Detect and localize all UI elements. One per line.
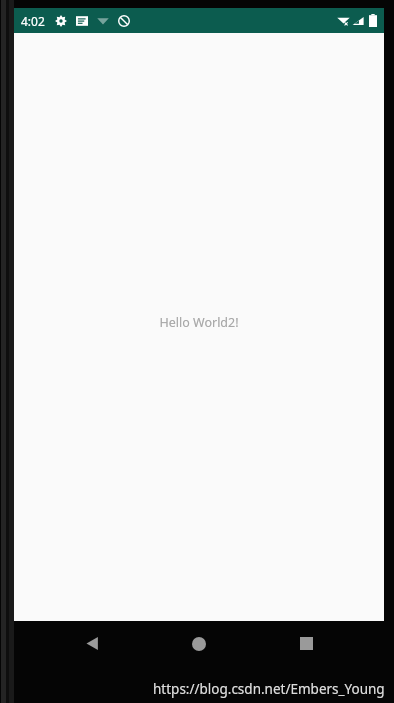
button[interactable]: Home [175, 621, 223, 666]
button[interactable]: Recent apps [282, 621, 330, 666]
staticText: Hello World2! [159, 314, 239, 331]
button[interactable]: Back [68, 621, 116, 666]
staticText: https://blog.csdn.net/Embers_Young [153, 680, 385, 698]
staticText: 4:02 [21, 13, 45, 29]
